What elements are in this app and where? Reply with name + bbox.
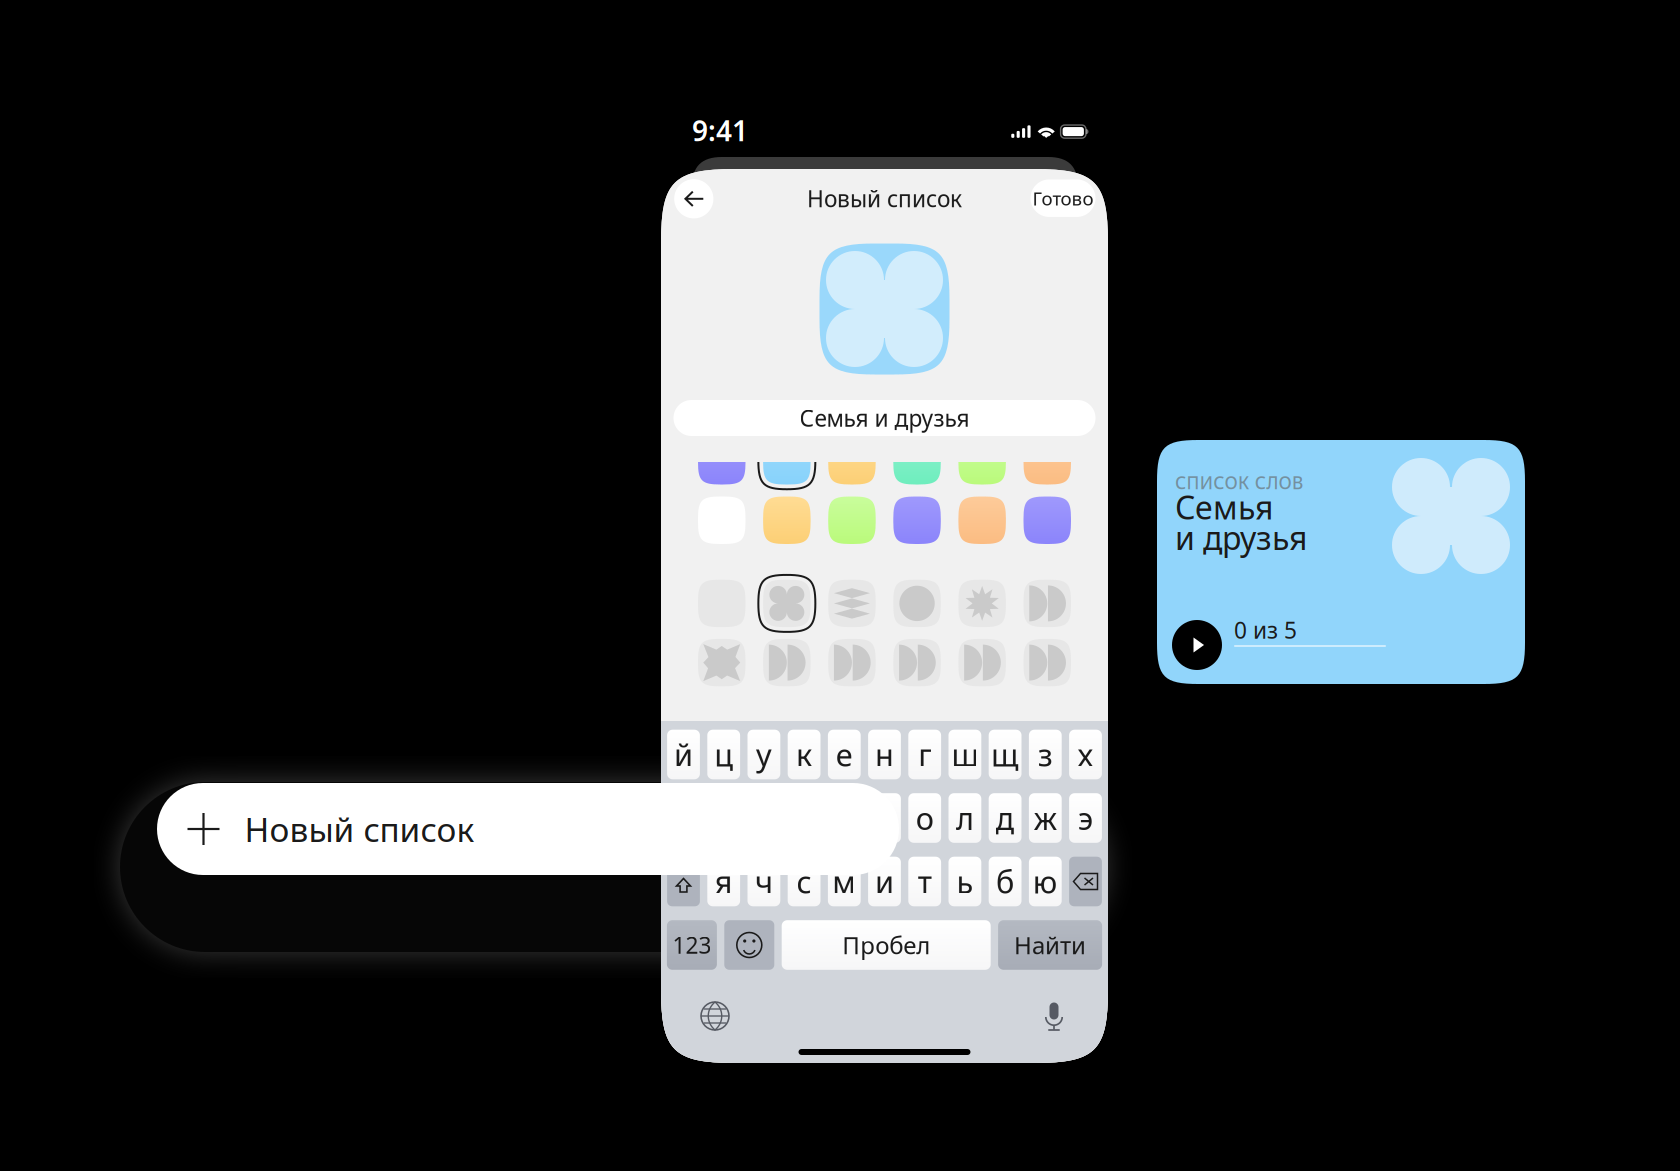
button[interactable]: л (948, 793, 981, 843)
staticText: х (1077, 734, 1093, 775)
button[interactable]: Значок (893, 639, 941, 686)
button[interactable]: ю (1029, 857, 1062, 906)
button[interactable]: Цвет (828, 437, 876, 484)
button[interactable]: Значок (1023, 580, 1071, 627)
button[interactable]: ш (948, 730, 981, 779)
button[interactable]: Цвет (763, 496, 811, 544)
button[interactable]: Цвет (958, 496, 1006, 544)
button[interactable]: Значок (958, 639, 1006, 686)
staticText: 9:41 (692, 112, 748, 149)
staticText: СПИСОК СЛОВ (1175, 471, 1303, 494)
button[interactable]: Цвет (1023, 437, 1071, 484)
staticText: Новый список (244, 807, 474, 851)
button[interactable]: Значок (1023, 639, 1071, 686)
staticText: 0 из 5 (1234, 615, 1297, 645)
button[interactable]: к (788, 730, 820, 779)
button[interactable]: Значок (893, 580, 941, 627)
button[interactable]: Готово (1030, 179, 1095, 217)
button[interactable]: Семья и друзья (673, 400, 1095, 436)
button[interactable]: Значок (828, 580, 876, 627)
button[interactable]: Сменить язык (700, 1001, 730, 1031)
staticText: з (1038, 734, 1053, 775)
button[interactable]: Значок (763, 639, 811, 686)
button[interactable]: е (828, 730, 861, 779)
button[interactable]: Удалить (1069, 857, 1102, 906)
staticText: Пробел (842, 929, 930, 961)
button[interactable]: Значок (828, 639, 876, 686)
staticText: л (956, 798, 974, 838)
staticText: и друзья (1175, 516, 1307, 559)
staticText: э (1078, 798, 1093, 838)
button[interactable]: т (908, 857, 941, 906)
button[interactable]: ь (948, 857, 981, 906)
staticText: 123 (672, 930, 711, 960)
staticText: н (875, 734, 894, 775)
staticText: я (715, 861, 733, 902)
button[interactable]: Цвет (698, 437, 745, 484)
button[interactable]: г (908, 730, 941, 779)
staticText: д (996, 798, 1015, 838)
button[interactable]: Эмодзи (724, 920, 774, 970)
button[interactable]: о (908, 793, 941, 843)
button[interactable]: б (989, 857, 1021, 906)
staticText: о (916, 798, 934, 838)
staticText: щ (991, 734, 1019, 775)
button[interactable]: щ (989, 730, 1021, 779)
staticText: ю (1033, 861, 1058, 902)
button[interactable]: р (868, 793, 901, 843)
button[interactable]: 123 (667, 920, 717, 970)
button[interactable]: х (1069, 730, 1102, 779)
button[interactable]: Пробел (782, 920, 991, 970)
button[interactable]: Значок (763, 580, 811, 627)
staticText: Семья (1175, 486, 1273, 528)
staticText: Новый список (807, 183, 962, 213)
button[interactable]: м (828, 857, 861, 906)
staticText: ч (755, 861, 773, 902)
button[interactable]: д (989, 793, 1021, 843)
button[interactable]: н (868, 730, 901, 779)
staticText: б (996, 861, 1014, 902)
staticText: г (918, 734, 931, 775)
button[interactable]: с (788, 857, 820, 906)
button[interactable]: Найти (998, 920, 1102, 970)
button[interactable]: ч (747, 857, 780, 906)
button[interactable]: Цвет (828, 496, 876, 544)
button[interactable]: з (1029, 730, 1062, 779)
button[interactable]: Цвет (698, 496, 745, 544)
button[interactable]: Цвет (893, 496, 941, 544)
staticText: т (918, 861, 932, 902)
button[interactable]: й (667, 730, 700, 779)
button[interactable]: Цвет (893, 437, 941, 484)
button[interactable]: Цвет (958, 437, 1006, 484)
button[interactable]: я (707, 857, 740, 906)
button[interactable]: Назад (674, 179, 713, 218)
button[interactable]: у (747, 730, 780, 779)
button[interactable]: Цвет (1023, 496, 1071, 544)
button[interactable]: ж (1029, 793, 1062, 843)
button[interactable]: СПИСОК СЛОВ (1157, 440, 1525, 684)
staticText: ь (956, 861, 973, 902)
button[interactable]: Диктовка (1041, 1000, 1067, 1032)
staticText: ж (1034, 798, 1057, 838)
staticText: к (796, 734, 812, 775)
button[interactable]: Новый список (157, 783, 899, 875)
button[interactable]: и (868, 857, 901, 906)
button[interactable]: э (1069, 793, 1102, 843)
button[interactable]: ц (707, 730, 740, 779)
staticText: Семья и друзья (799, 403, 969, 433)
button[interactable]: Значок (698, 639, 745, 686)
staticText: й (674, 734, 693, 775)
button[interactable]: Значок (958, 580, 1006, 627)
button[interactable]: Цвет (763, 437, 811, 484)
button[interactable]: Верхний регистр (667, 857, 700, 906)
